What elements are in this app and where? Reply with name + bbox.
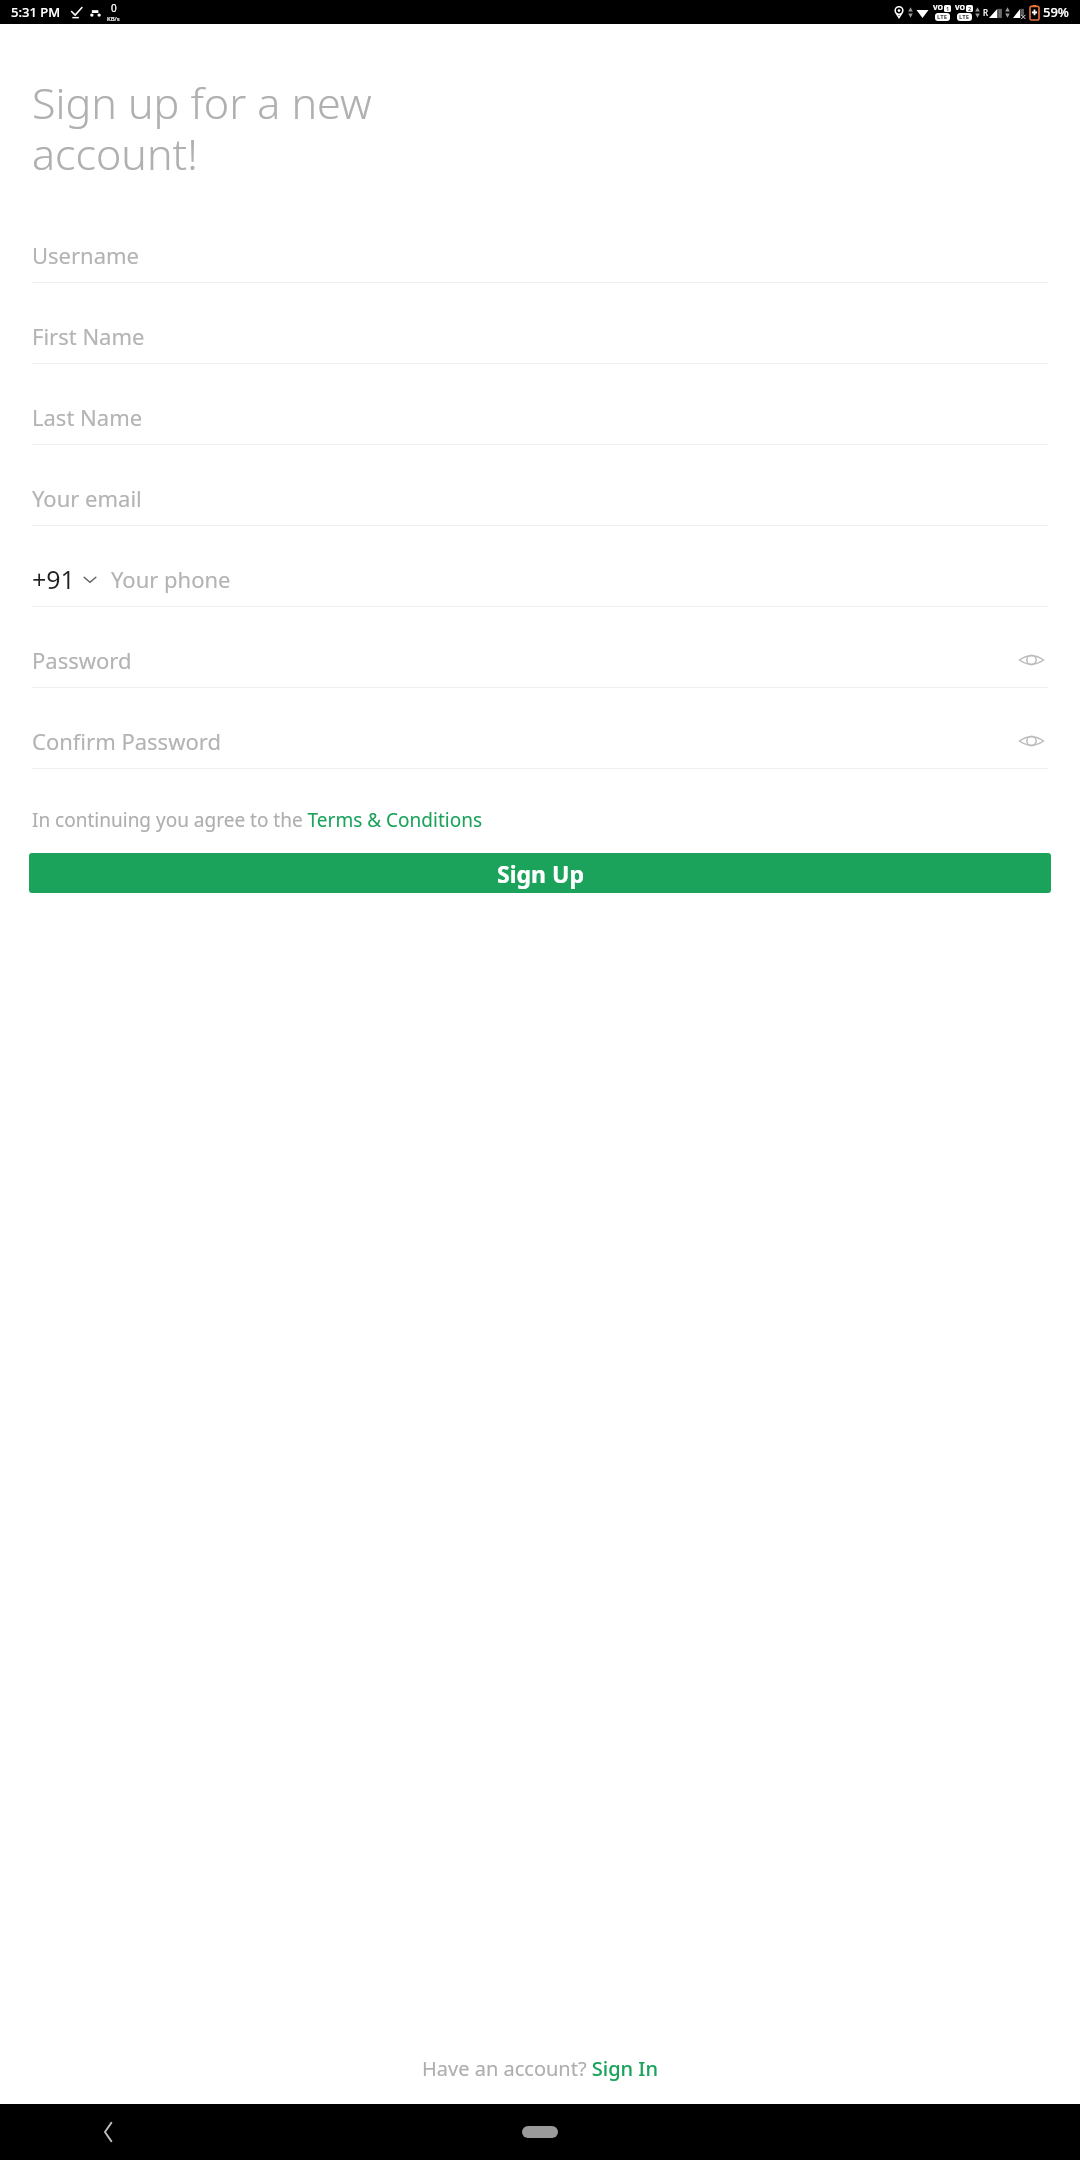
staticText: 0 xyxy=(111,1,117,15)
staticText: 5:31 PM xyxy=(11,3,61,21)
staticText: Last Name xyxy=(32,402,143,432)
staticText: 2 xyxy=(968,5,972,12)
staticText: First Name xyxy=(32,321,145,351)
staticText: Username xyxy=(32,240,140,270)
button[interactable]: Sign Up xyxy=(29,853,1051,893)
button[interactable]: In continuing you agree to the Terms & C… xyxy=(32,807,1048,833)
staticText: R xyxy=(983,7,988,18)
staticText: Password xyxy=(32,645,132,675)
button[interactable]: Password xyxy=(0,633,1080,714)
button[interactable]: Have an account? Sign In xyxy=(0,2055,1080,2082)
staticText: Sign up for a new account! xyxy=(32,73,372,183)
staticText: VO xyxy=(933,3,944,13)
staticText: Have an account? Sign In xyxy=(422,2055,658,2082)
button[interactable]: Your email xyxy=(0,471,1080,552)
button[interactable]: Back xyxy=(90,2114,126,2150)
staticText: +91 xyxy=(32,562,75,596)
staticText: In continuing you agree to the Terms & C… xyxy=(32,807,482,833)
button[interactable]: Country code +91 xyxy=(32,562,97,596)
button[interactable]: Last Name xyxy=(0,390,1080,471)
staticText: Your email xyxy=(32,483,142,513)
button[interactable]: Your phone xyxy=(111,564,1048,594)
staticText: Sign Up xyxy=(497,858,584,889)
button[interactable]: First Name xyxy=(0,309,1080,390)
button[interactable]: Show password xyxy=(1014,724,1048,758)
staticText: KB/s xyxy=(107,15,120,23)
button[interactable]: Home xyxy=(522,2126,558,2138)
staticText: Confirm Password xyxy=(32,726,221,756)
staticText: LTE xyxy=(937,13,948,21)
staticText: LTE xyxy=(959,13,970,21)
button[interactable]: Confirm Password xyxy=(0,714,1080,795)
button[interactable]: Show password xyxy=(1014,643,1048,677)
staticText: Your phone xyxy=(111,564,231,594)
staticText: 1 xyxy=(946,5,950,12)
staticText: VO xyxy=(955,3,966,13)
staticText: 59% xyxy=(1043,3,1069,21)
button[interactable]: Username xyxy=(0,228,1080,309)
